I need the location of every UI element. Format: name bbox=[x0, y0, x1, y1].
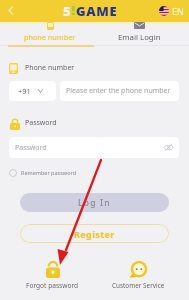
staticText: 5 bbox=[63, 2, 71, 19]
button[interactable]: Language EN bbox=[159, 2, 184, 19]
button[interactable]: Customer Service bbox=[110, 261, 167, 290]
staticText: Password bbox=[15, 143, 164, 153]
staticText: phone number bbox=[24, 32, 76, 42]
staticText: Register bbox=[74, 228, 115, 240]
button[interactable]: Forgot password bbox=[24, 261, 81, 290]
staticText: Password bbox=[25, 118, 57, 128]
staticText: +91 bbox=[18, 86, 31, 96]
button[interactable]: Country code +91 bbox=[9, 81, 56, 101]
staticText: Customer Service bbox=[112, 281, 165, 290]
button[interactable]: Log In bbox=[20, 193, 169, 212]
staticText: Phone number bbox=[25, 63, 75, 73]
button[interactable]: Email Login bbox=[96, 22, 182, 46]
button[interactable]: Please enter the phone number bbox=[60, 81, 179, 101]
staticText: GAME bbox=[76, 2, 118, 19]
staticText: Remember password bbox=[21, 169, 77, 176]
staticText: EN bbox=[172, 5, 184, 17]
button[interactable]: phone number bbox=[7, 22, 93, 46]
staticText: Please enter the phone number bbox=[66, 86, 171, 96]
button[interactable]: Back bbox=[2, 2, 19, 19]
button[interactable]: Password bbox=[9, 137, 179, 158]
staticText: Log In bbox=[78, 197, 111, 209]
button[interactable]: 5GAME logo bbox=[63, 2, 118, 19]
button[interactable]: Remember password bbox=[9, 167, 77, 178]
button[interactable]: Show password bbox=[164, 143, 173, 152]
staticText: Forgot password bbox=[26, 281, 79, 290]
staticText: Email Login bbox=[118, 32, 161, 43]
button[interactable]: Register bbox=[20, 224, 169, 243]
